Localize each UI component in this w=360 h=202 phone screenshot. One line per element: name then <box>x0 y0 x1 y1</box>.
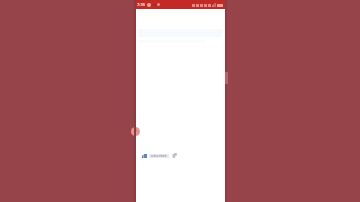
button[interactable]: Like <box>142 153 147 158</box>
button[interactable]: Compose <box>131 127 140 136</box>
staticText: subscribed <box>151 154 167 158</box>
staticText: 7:35 <box>137 2 145 7</box>
button[interactable]: subscribed <box>149 154 169 158</box>
button[interactable]: Share <box>172 153 177 158</box>
